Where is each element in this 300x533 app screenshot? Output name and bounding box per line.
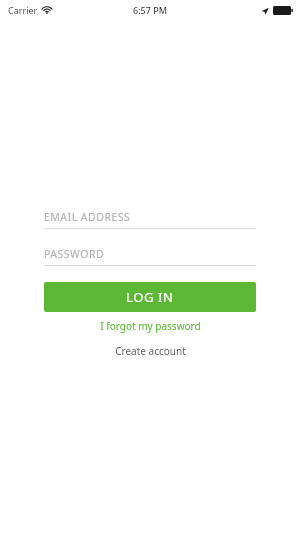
staticText: I forgot my password	[100, 319, 201, 333]
button[interactable]: PASSWORD	[44, 243, 256, 266]
staticText: Create account	[115, 344, 186, 358]
staticText: Carrier	[8, 4, 38, 16]
button[interactable]: LOG IN	[44, 282, 256, 312]
staticText: EMAIL ADDRESS	[44, 210, 131, 224]
button[interactable]: I forgot my password	[44, 316, 256, 336]
staticText: 6:57 PM	[133, 4, 167, 16]
staticText: PASSWORD	[44, 247, 105, 261]
button[interactable]: EMAIL ADDRESS	[44, 206, 256, 229]
button[interactable]: Create account	[44, 341, 256, 361]
staticText: LOG IN	[126, 288, 174, 306]
